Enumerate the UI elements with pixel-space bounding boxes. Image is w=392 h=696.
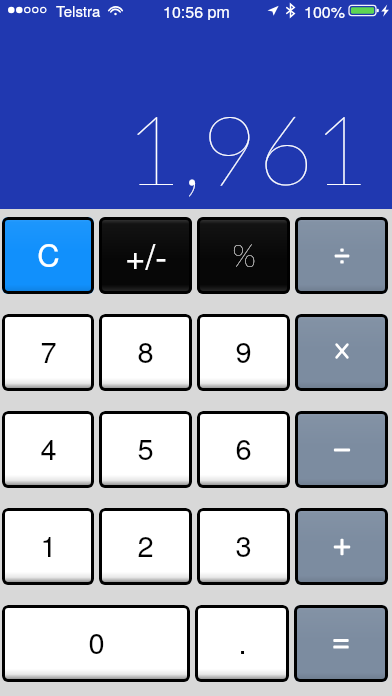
button[interactable]: %: [197, 217, 290, 294]
button[interactable]: Multiply: [295, 314, 388, 391]
staticText: C: [37, 231, 60, 275]
button[interactable]: Equals: [294, 605, 388, 682]
button[interactable]: Minus: [295, 411, 388, 488]
staticText: Telstra: [56, 0, 101, 20]
staticText: .: [238, 621, 247, 663]
staticText: %: [232, 236, 256, 273]
button[interactable]: 5: [99, 411, 192, 488]
button[interactable]: 1: [2, 508, 94, 585]
button[interactable]: C: [2, 217, 94, 294]
staticText: 5: [137, 427, 154, 469]
staticText: +/-: [125, 230, 167, 280]
button[interactable]: Plus: [295, 508, 388, 585]
button[interactable]: 3: [197, 508, 290, 585]
button[interactable]: 7: [2, 314, 94, 391]
button[interactable]: 4: [2, 411, 94, 488]
button[interactable]: 2: [99, 508, 192, 585]
staticText: 4: [40, 427, 57, 469]
staticText: 100%: [304, 0, 345, 20]
button[interactable]: Divide: [295, 217, 388, 294]
button[interactable]: .: [195, 605, 289, 682]
button[interactable]: 8: [99, 314, 192, 391]
button[interactable]: 9: [197, 314, 290, 391]
staticText: 9: [235, 330, 252, 372]
staticText: 0: [88, 621, 105, 663]
staticText: 7: [40, 330, 57, 372]
staticText: 2: [137, 524, 154, 566]
staticText: 10:56 pm: [163, 0, 230, 20]
button[interactable]: 6: [197, 411, 290, 488]
staticText: 6: [235, 427, 252, 469]
button[interactable]: 0: [2, 605, 190, 682]
staticText: 1: [40, 524, 57, 566]
staticText: 8: [137, 330, 154, 372]
staticText: 3: [235, 524, 252, 566]
staticText: 1,961: [126, 90, 370, 205]
button[interactable]: +/-: [99, 217, 192, 294]
